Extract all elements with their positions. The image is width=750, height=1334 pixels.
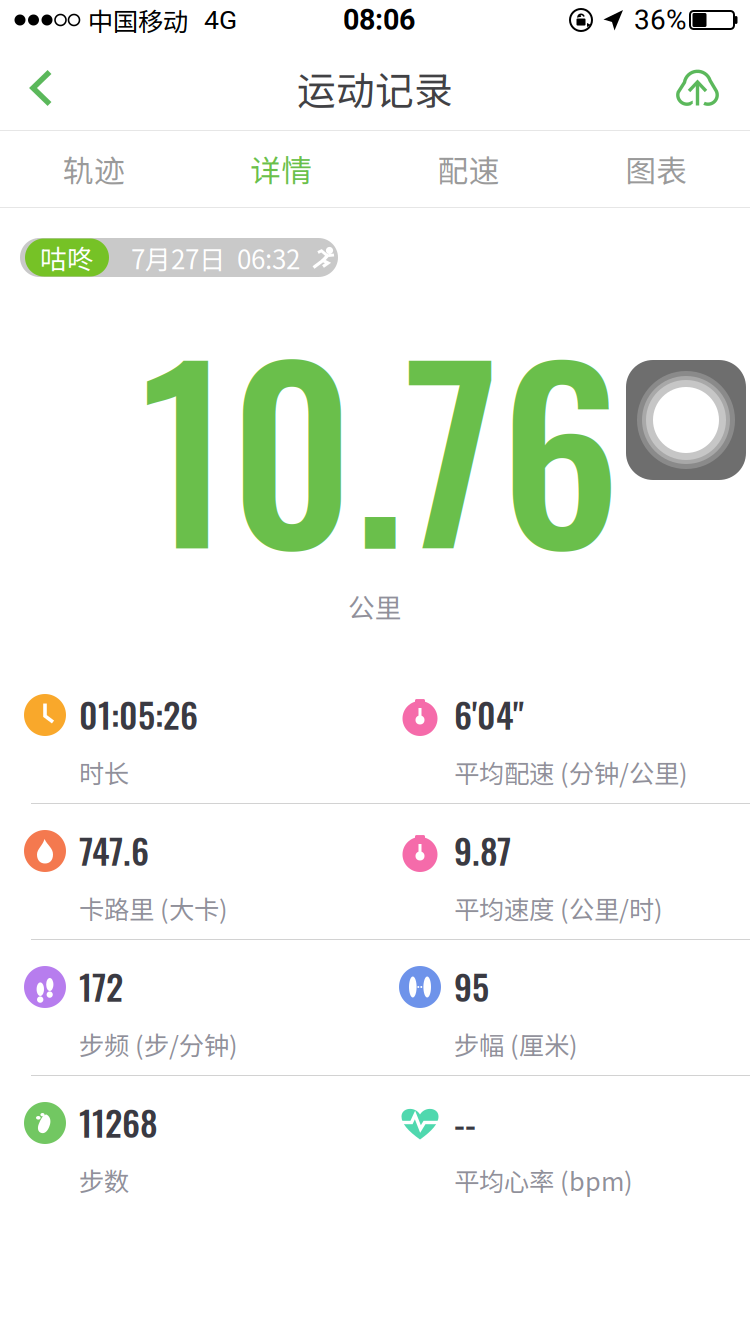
staticText: 中国移动 [88, 2, 188, 38]
staticText: 7月27日 06:32 [131, 239, 300, 277]
button[interactable]: 747.6 [0, 804, 375, 939]
staticText: 图表 [625, 147, 687, 191]
staticText: 咕咚 [40, 238, 94, 277]
button[interactable]: 01:05:26 [0, 668, 375, 803]
staticText: 10.76 [141, 272, 621, 616]
button[interactable]: 配速 [375, 131, 562, 207]
staticText: 36% [634, 4, 687, 36]
staticText: 6'04" [454, 688, 524, 740]
staticText: 平均配速 (分钟/公里) [454, 754, 688, 790]
staticText: 747.6 [79, 824, 149, 876]
button[interactable]: 11268 [0, 1076, 375, 1211]
staticText: 配速 [438, 147, 500, 191]
staticText: 详情 [250, 147, 312, 191]
staticText: 公里 [348, 587, 402, 625]
staticText: 08:06 [343, 3, 415, 37]
button[interactable]: 95 [375, 940, 750, 1075]
staticText: -- [454, 1096, 476, 1148]
staticText: 卡路里 (大卡) [79, 890, 228, 926]
button[interactable]: 详情 [187, 131, 375, 207]
button[interactable]: Back [0, 46, 79, 130]
button[interactable]: 咕咚 [20, 238, 338, 277]
button[interactable]: 9.87 [375, 804, 750, 939]
staticText: 步频 (步/分钟) [79, 1026, 238, 1062]
staticText: 步数 [79, 1162, 129, 1198]
staticText: 步幅 (厘米) [454, 1026, 578, 1062]
button[interactable]: -- [375, 1076, 750, 1211]
button[interactable]: Upload to cloud [648, 46, 750, 130]
button[interactable]: 172 [0, 940, 375, 1075]
staticText: 01:05:26 [79, 688, 198, 740]
staticText: 11268 [79, 1096, 158, 1148]
staticText: 9.87 [454, 824, 511, 876]
staticText: 平均速度 (公里/时) [454, 890, 663, 926]
staticText: 95 [454, 960, 489, 1012]
button[interactable]: 6'04" [375, 668, 750, 803]
staticText: 时长 [79, 754, 129, 790]
staticText: 运动记录 [297, 60, 453, 116]
staticText: 4G [204, 4, 237, 36]
staticText: 172 [79, 960, 123, 1012]
staticText: 平均心率 (bpm) [454, 1162, 633, 1198]
staticText: 轨迹 [63, 147, 125, 191]
button[interactable]: 图表 [562, 131, 750, 207]
button[interactable]: 轨迹 [0, 131, 187, 207]
